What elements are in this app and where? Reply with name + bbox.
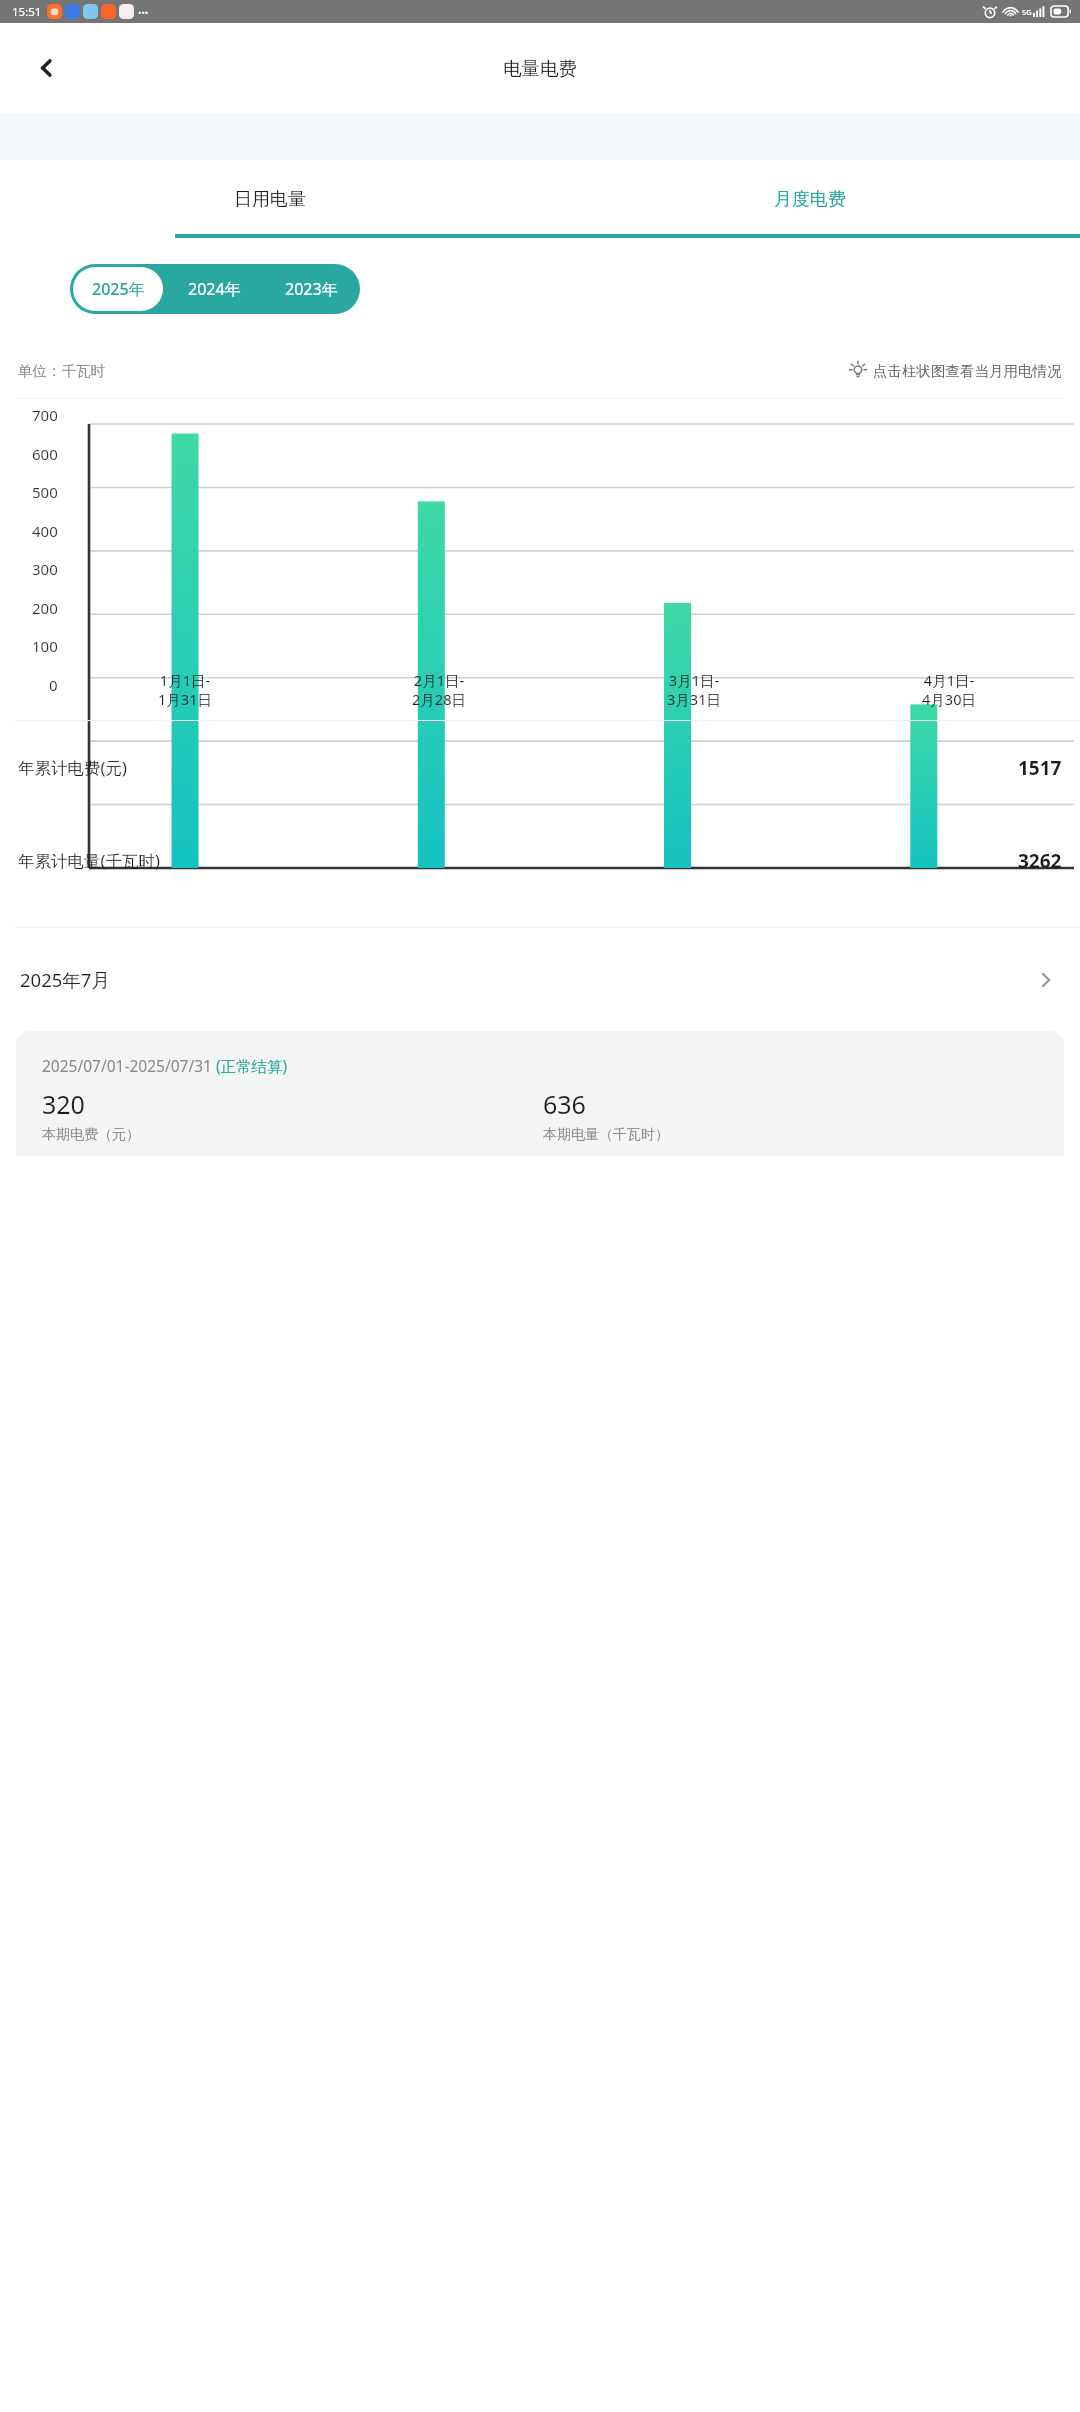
staticText: 636 bbox=[543, 1087, 586, 1121]
staticText: 点击柱状图查看当月用电情况 bbox=[873, 362, 1062, 380]
button[interactable]: 2023年 bbox=[263, 264, 360, 314]
staticText: 100 bbox=[32, 636, 58, 670]
staticText: 0 bbox=[49, 675, 58, 709]
staticText: 400 bbox=[32, 521, 58, 555]
staticText: 本期电费（元） bbox=[42, 1126, 140, 1144]
staticText: 320 bbox=[42, 1087, 85, 1121]
staticText: 本期电量（千瓦时） bbox=[543, 1126, 669, 1144]
staticText: 2025年7月 bbox=[20, 967, 110, 992]
staticText: 700 bbox=[32, 405, 58, 439]
staticText: 1月1日- 1月31日 bbox=[158, 670, 212, 709]
staticText: 3月1日- 3月31日 bbox=[667, 670, 721, 709]
staticText: 2025/07/01-2025/07/31 (正常结算) bbox=[42, 1055, 288, 1076]
button[interactable]: 日用电量 bbox=[0, 160, 540, 238]
button[interactable]: 2025年 bbox=[73, 267, 163, 311]
staticText: 日用电量 bbox=[234, 188, 306, 211]
staticText: 1517 bbox=[1018, 755, 1062, 781]
staticText: 2024年 bbox=[188, 278, 241, 300]
button[interactable]: 月度电费 bbox=[540, 160, 1080, 238]
staticText: 年累计电费(元) bbox=[18, 756, 127, 779]
staticText: 电量电费 bbox=[503, 57, 577, 80]
button[interactable]: 年累计电费(元) bbox=[0, 721, 1080, 814]
staticText: 2月1日- 2月28日 bbox=[412, 670, 466, 709]
staticText: 200 bbox=[32, 598, 58, 632]
staticText: 月度电费 bbox=[774, 188, 846, 211]
staticText: 4月1日- 4月30日 bbox=[922, 670, 976, 709]
button[interactable]: 年累计电量(千瓦时) bbox=[0, 814, 1080, 907]
staticText: 15:51 bbox=[12, 4, 42, 20]
staticText: 单位：千瓦时 bbox=[18, 362, 105, 380]
staticText: 600 bbox=[32, 444, 58, 478]
staticText: 5G bbox=[1022, 7, 1032, 17]
staticText: 2025年 bbox=[92, 278, 145, 300]
staticText: 年累计电量(千瓦时) bbox=[18, 849, 160, 872]
staticText: 2023年 bbox=[285, 278, 338, 300]
staticText: ••• bbox=[138, 6, 149, 18]
staticText: 500 bbox=[32, 482, 58, 516]
staticText: 3262 bbox=[1018, 848, 1062, 874]
button[interactable]: 2025年7月 bbox=[0, 928, 1080, 1031]
button[interactable]: 返回 bbox=[22, 43, 72, 93]
button[interactable]: 2025/07/01-2025/07/31 (正常结算) bbox=[16, 1031, 1064, 1156]
button[interactable]: 2024年 bbox=[166, 264, 263, 314]
staticText: 300 bbox=[32, 559, 58, 593]
